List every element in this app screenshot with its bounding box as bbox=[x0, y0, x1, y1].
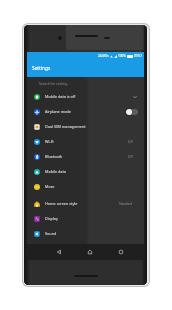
staticText: Mobile data is off bbox=[45, 94, 76, 99]
staticText: Bluetooth bbox=[45, 154, 63, 159]
button[interactable]: Recents bbox=[116, 245, 126, 259]
staticText: Wi-Fi bbox=[45, 139, 54, 144]
staticText: 100% bbox=[118, 54, 126, 58]
staticText: Sound bbox=[45, 231, 57, 236]
staticText: Off bbox=[128, 140, 133, 144]
button[interactable]: Dual SIM management bbox=[27, 119, 144, 134]
staticText: Display bbox=[45, 216, 58, 221]
button[interactable]: Search for setting... bbox=[27, 77, 144, 89]
button[interactable]: More bbox=[27, 179, 144, 194]
staticText: Airplane mode bbox=[45, 109, 71, 114]
staticText: Standard bbox=[119, 202, 133, 206]
staticText: More bbox=[45, 184, 55, 189]
staticText: 07:57 bbox=[134, 54, 142, 58]
button[interactable]: Airplane mode bbox=[27, 104, 144, 119]
button[interactable]: Back bbox=[54, 245, 64, 259]
staticText: Search for setting... bbox=[39, 81, 70, 86]
staticText: 24.6K/s bbox=[98, 54, 109, 58]
staticText: Settings bbox=[32, 65, 51, 72]
button[interactable]: Wi-Fi bbox=[27, 134, 144, 149]
staticText: Home screen style bbox=[45, 201, 78, 206]
button[interactable]: Sound bbox=[27, 226, 144, 241]
button[interactable]: Mobile data bbox=[27, 164, 144, 179]
staticText: Off bbox=[128, 155, 133, 159]
staticText: Mobile data bbox=[45, 169, 66, 174]
button[interactable]: Bluetooth bbox=[27, 149, 144, 164]
button[interactable]: Home screen style bbox=[27, 196, 144, 211]
staticText: Dual SIM management bbox=[45, 124, 86, 129]
button[interactable]: Home bbox=[85, 245, 95, 259]
button[interactable]: Display bbox=[27, 211, 144, 226]
button[interactable]: Mobile data is off bbox=[27, 89, 144, 104]
